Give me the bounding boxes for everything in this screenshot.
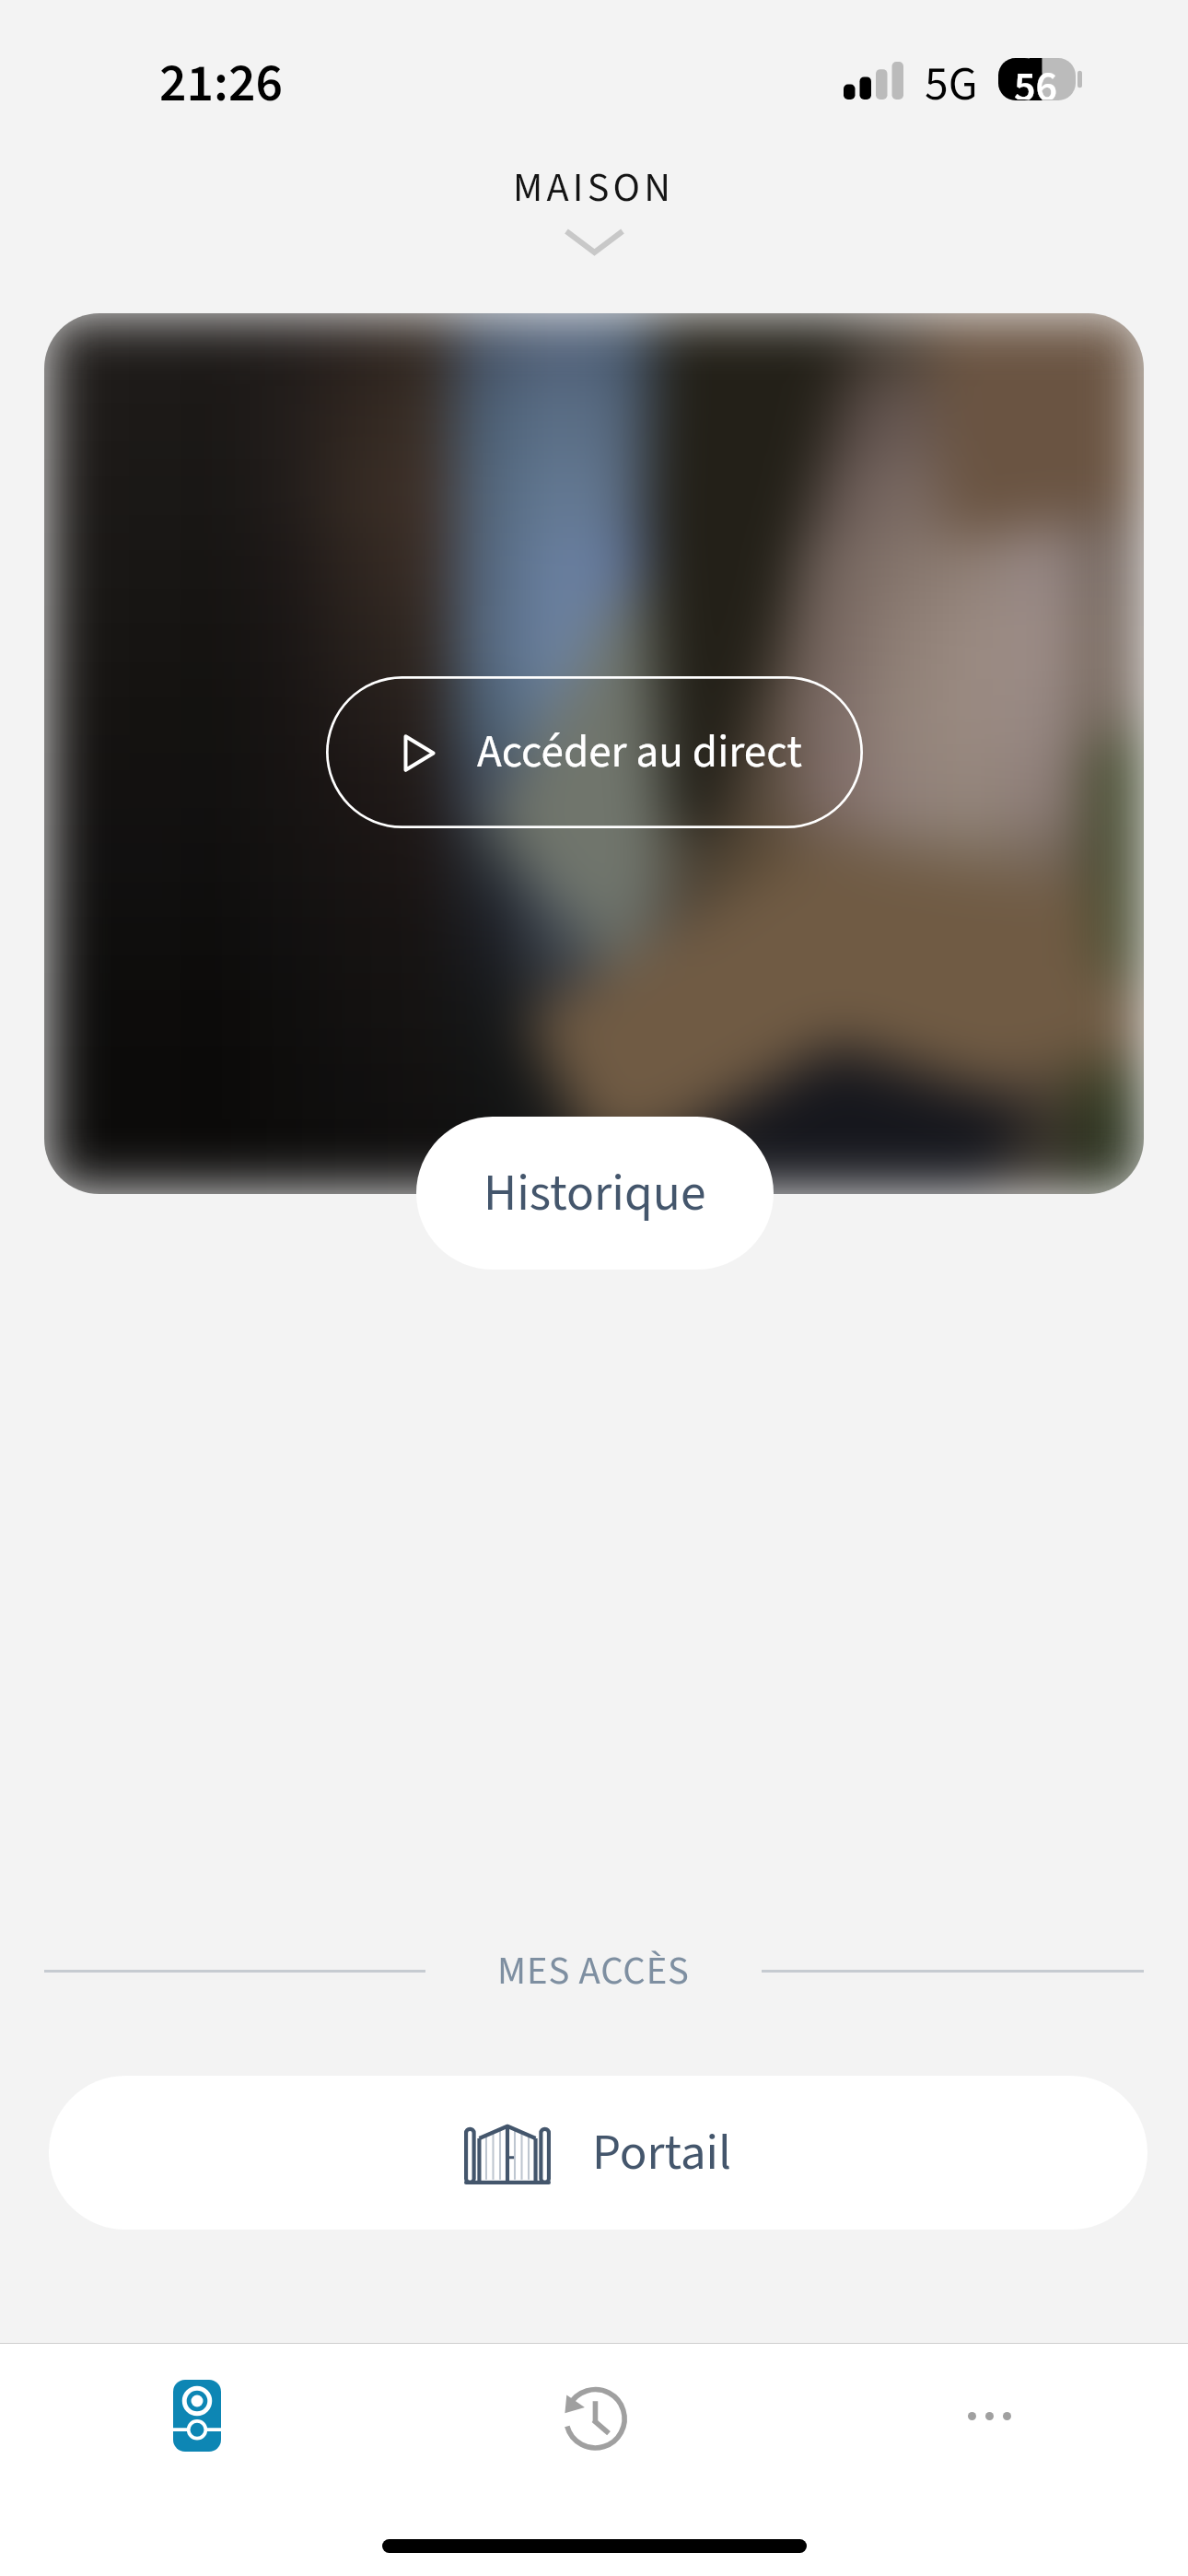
button[interactable]: Historique <box>503 2343 685 2488</box>
button[interactable]: Caméra du portail <box>44 313 1144 1194</box>
staticText: Historique <box>483 1157 706 1230</box>
button[interactable]: Historique <box>416 1117 774 1270</box>
button[interactable]: Plus <box>898 2343 1080 2488</box>
button[interactable]: Accéder au direct <box>326 676 863 828</box>
button[interactable]: Interphone <box>106 2343 288 2488</box>
staticText: 21:26 <box>159 46 284 122</box>
button[interactable]: Portail <box>49 2076 1147 2230</box>
staticText: Portail <box>592 2117 732 2189</box>
staticText: MAISON <box>513 159 675 215</box>
staticText: MES ACCÈS <box>497 1943 690 1999</box>
staticText: 5G <box>925 51 978 118</box>
staticText: 56 <box>1014 57 1058 100</box>
staticText: Accéder au direct <box>477 720 802 785</box>
